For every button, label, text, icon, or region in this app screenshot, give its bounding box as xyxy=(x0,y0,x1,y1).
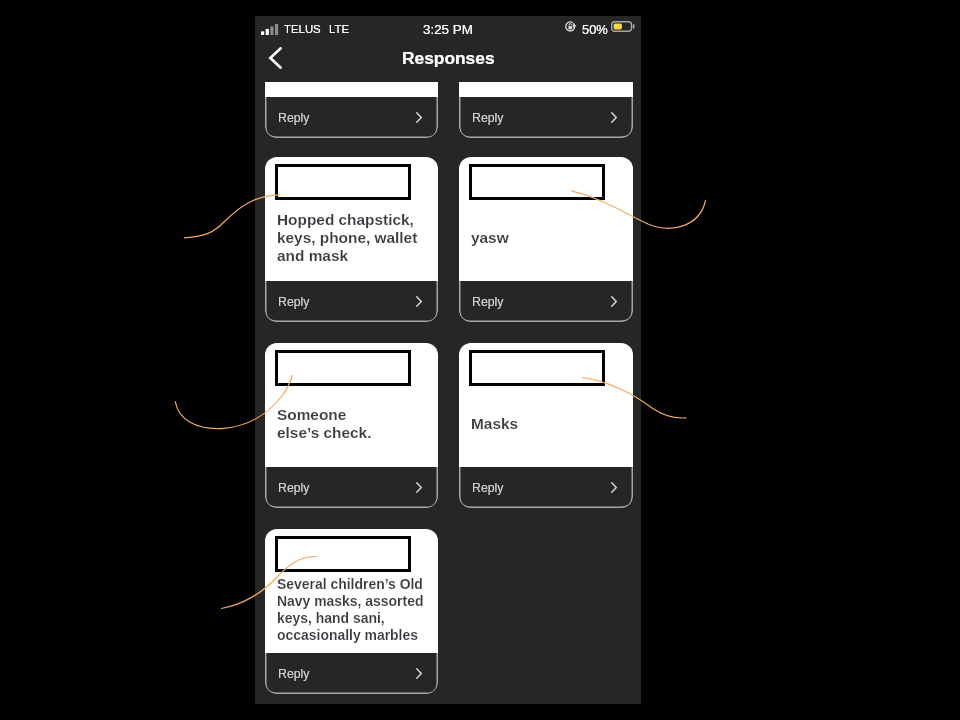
button[interactable]: Someone else’s check. xyxy=(265,343,438,467)
button[interactable]: yasw xyxy=(459,157,633,281)
staticText: Hopped chapstick, keys, phone, wallet an… xyxy=(277,211,425,265)
button[interactable]: Back xyxy=(257,40,293,76)
staticText: yasw xyxy=(471,229,620,247)
button[interactable]: Several children’s Old Navy masks, assor… xyxy=(265,529,438,653)
staticText: 50% xyxy=(582,22,608,36)
staticText: Reply xyxy=(278,111,310,125)
staticText: Reply xyxy=(472,111,504,125)
button[interactable]: Reply xyxy=(265,467,438,508)
staticText: TELUS xyxy=(284,23,321,36)
staticText: Masks xyxy=(471,415,620,433)
staticText: Someone else’s check. xyxy=(277,406,425,442)
button[interactable]: Reply xyxy=(459,281,633,322)
button[interactable]: Reply xyxy=(265,653,438,694)
staticText: Responses xyxy=(402,48,495,67)
button[interactable]: Reply xyxy=(459,97,633,138)
button[interactable]: Reply xyxy=(459,467,633,508)
staticText: Reply xyxy=(278,295,310,309)
button[interactable]: Masks xyxy=(459,343,633,467)
staticText: Reply xyxy=(278,481,310,495)
staticText: Reply xyxy=(278,667,310,681)
staticText: Several children’s Old Navy masks, assor… xyxy=(277,576,425,644)
button[interactable]: Reply xyxy=(265,97,438,138)
button[interactable]: Reply xyxy=(265,281,438,322)
staticText: LTE xyxy=(329,23,350,36)
staticText: 3:25 PM xyxy=(423,22,473,37)
other: Rotation lock xyxy=(565,21,577,32)
button[interactable]: Hopped chapstick, keys, phone, wallet an… xyxy=(265,157,438,281)
staticText: Reply xyxy=(472,295,504,309)
staticText: Reply xyxy=(472,481,504,495)
